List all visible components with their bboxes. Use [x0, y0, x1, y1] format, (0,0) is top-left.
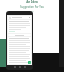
button[interactable]: Menu — [8, 16, 31, 19]
button[interactable] — [8, 20, 31, 33]
button[interactable]: Create new document — [28, 61, 31, 64]
button[interactable] — [8, 37, 31, 64]
staticText: tap — [30, 10, 34, 13]
staticText: Suggestion For You — [20, 5, 44, 9]
button[interactable] — [8, 34, 31, 36]
staticText: An Idea — [26, 0, 38, 4]
